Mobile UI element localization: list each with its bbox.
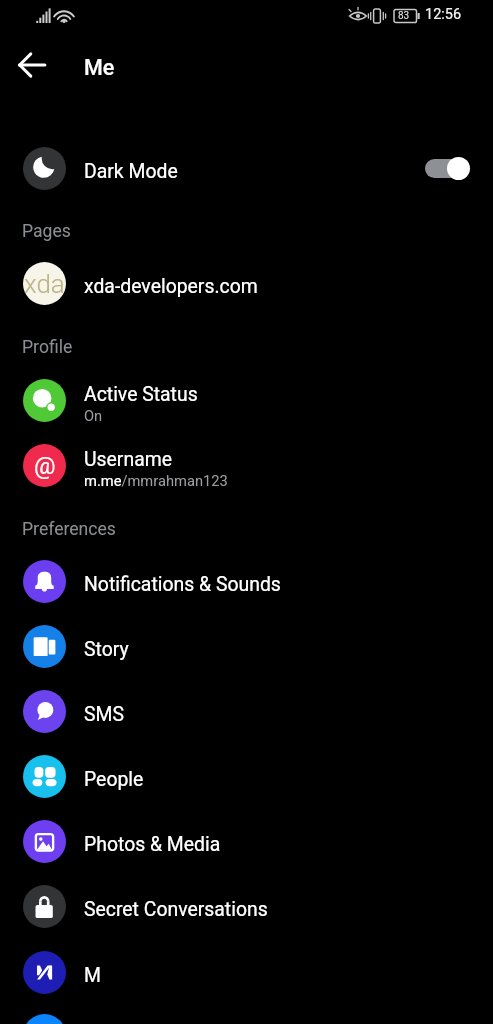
button[interactable]: xda bbox=[0, 251, 493, 316]
staticText: 83 bbox=[398, 10, 410, 22]
staticText: Story bbox=[84, 638, 129, 661]
button[interactable]: People bbox=[0, 744, 493, 809]
button[interactable]: Back bbox=[8, 41, 56, 89]
staticText: SMS bbox=[84, 703, 124, 726]
button[interactable]: Story bbox=[0, 614, 493, 679]
staticText: Photos & Media bbox=[84, 833, 221, 856]
button[interactable]: Notifications & Sounds bbox=[0, 549, 493, 614]
staticText: Username bbox=[84, 448, 172, 471]
staticText: m.me/mmrahman123 bbox=[84, 472, 228, 489]
staticText: Dark Mode bbox=[84, 160, 178, 183]
button[interactable]: Secret Conversations bbox=[0, 874, 493, 939]
button[interactable]: @ bbox=[0, 433, 493, 498]
button[interactable]: SMS bbox=[0, 679, 493, 744]
staticText: xda bbox=[24, 269, 65, 299]
button[interactable]: M bbox=[0, 940, 493, 1005]
button[interactable]: Dark Mode bbox=[0, 136, 493, 201]
staticText: Pages bbox=[22, 221, 71, 242]
button[interactable]: Active Status bbox=[0, 368, 493, 433]
staticText: People bbox=[84, 768, 144, 791]
staticText: @ bbox=[34, 452, 56, 480]
staticText: Preferences bbox=[22, 519, 116, 540]
staticText: Notifications & Sounds bbox=[84, 573, 281, 596]
staticText: 12:56 bbox=[425, 6, 462, 23]
staticText: Me bbox=[84, 55, 115, 80]
staticText: Secret Conversations bbox=[84, 898, 268, 921]
button[interactable]: Photos & Media bbox=[0, 809, 493, 874]
staticText: On bbox=[84, 407, 103, 424]
staticText: Active Status bbox=[84, 383, 198, 406]
staticText: Profile bbox=[22, 337, 73, 358]
staticText: M bbox=[84, 964, 101, 987]
staticText: xda-developers.com bbox=[84, 275, 258, 298]
